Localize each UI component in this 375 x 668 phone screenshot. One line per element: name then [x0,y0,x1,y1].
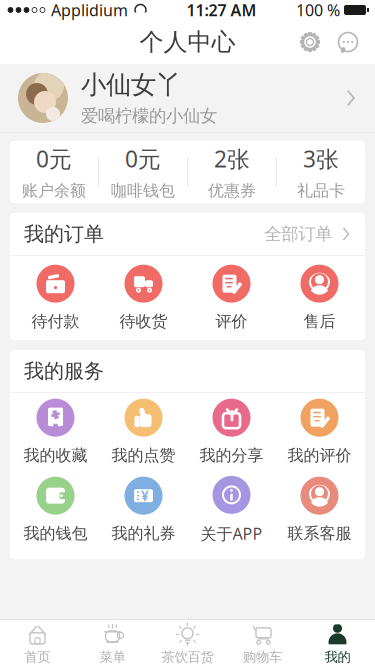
staticText: 我的收藏 [23,446,87,465]
button[interactable]: 关于APP [187,472,275,548]
staticText: 售后 [303,312,335,331]
staticText: 小仙女丫 [81,69,181,100]
button[interactable]: 小仙女丫 [0,64,375,132]
staticText: 2张 [214,144,250,174]
staticText: 首页 [24,649,50,665]
button[interactable]: 首页 [0,620,75,668]
button[interactable]: 我的点赞 [99,394,187,470]
staticText: 待付款 [31,312,79,331]
button[interactable]: 0元 [99,141,187,203]
staticText: 礼品卡 [297,181,345,200]
staticText: 联系客服 [287,524,351,543]
staticText: 评价 [215,312,247,331]
button[interactable]: 设置 [291,20,329,64]
staticText: 我的礼券 [111,524,175,543]
staticText: 爱喝柠檬的小仙女 [81,105,217,127]
staticText: 100 % [296,0,340,21]
staticText: 优惠券 [208,181,256,200]
staticText: Applidium [51,0,128,21]
staticText: ¥ [141,487,149,504]
button[interactable]: 联系客服 [275,472,363,548]
button[interactable]: 我的分享 [187,394,275,470]
staticText: 账户余额 [22,181,86,200]
staticText: 3张 [303,144,339,174]
staticText: 0元 [125,144,161,174]
staticText: 全部订单 [264,223,332,245]
button[interactable]: 待收货 [99,260,187,336]
button[interactable]: 我的评价 [275,394,363,470]
button[interactable]: 0元 [10,141,98,203]
button[interactable]: 购物车 [225,620,300,668]
button[interactable]: 3张 [277,141,365,203]
staticText: 我的服务 [24,359,104,383]
button[interactable]: 售后 [275,260,363,336]
button[interactable]: 客服消息 [329,20,367,64]
button[interactable]: 2张 [188,141,276,203]
staticText: 茶饮百货 [161,649,213,665]
button[interactable]: 待付款 [11,260,99,336]
staticText: 咖啡钱包 [111,181,175,200]
staticText: 个人中心 [139,27,235,57]
staticText: 我的评价 [287,446,351,465]
button[interactable]: 我的 [300,620,375,668]
staticText: 菜单 [99,649,125,665]
button[interactable]: 茶饮百货 [150,620,225,668]
button[interactable]: ¥ [99,472,187,548]
staticText: 我的 [324,649,350,665]
staticText: 待收货 [119,312,167,331]
button[interactable]: 我的订单 [10,213,365,255]
staticText: 我的订单 [24,222,104,246]
button[interactable]: 菜单 [75,620,150,668]
staticText: 我的分享 [199,446,263,465]
button[interactable]: 我的收藏 [11,394,99,470]
button[interactable]: 我的钱包 [11,472,99,548]
staticText: 0元 [36,144,72,174]
staticText: 我的钱包 [23,524,87,543]
staticText: 我的点赞 [111,446,175,465]
staticText: 购物车 [243,649,282,665]
staticText: 11:27 AM [186,0,256,21]
staticText: 关于APP [200,523,262,544]
button[interactable]: 评价 [187,260,275,336]
